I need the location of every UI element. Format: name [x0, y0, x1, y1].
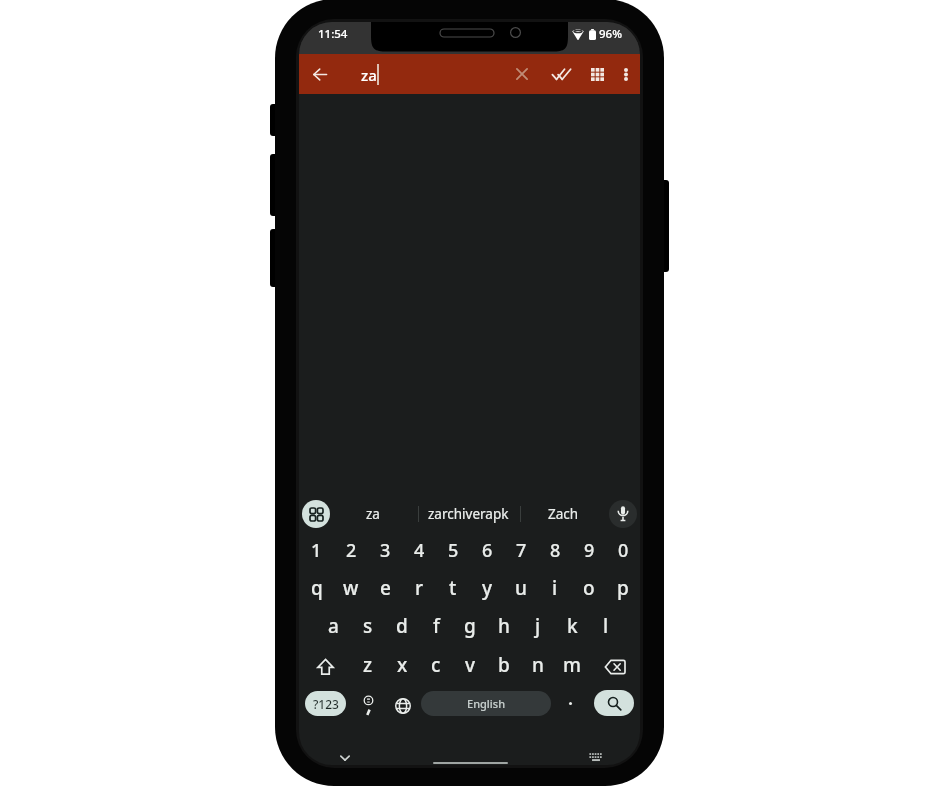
button[interactable]: Zach: [525, 496, 601, 532]
staticText: h: [498, 613, 510, 639]
staticText: v: [465, 652, 476, 678]
button[interactable]: Clear: [508, 60, 536, 88]
staticText: 96%: [599, 26, 622, 42]
button[interactable]: n: [521, 647, 555, 687]
button[interactable]: Backspace: [589, 647, 640, 687]
button[interactable]: More options: [612, 60, 640, 88]
staticText: 11:54: [318, 26, 348, 42]
staticText: z: [363, 652, 373, 678]
staticText: 5: [448, 538, 459, 563]
button[interactable]: k: [555, 607, 589, 645]
button[interactable]: q: [299, 569, 334, 607]
button[interactable]: f: [419, 607, 453, 645]
button[interactable]: e: [368, 569, 402, 607]
button[interactable]: g: [453, 607, 487, 645]
staticText: b: [498, 652, 510, 678]
button[interactable]: Search: [594, 690, 634, 716]
button[interactable]: l: [589, 607, 623, 645]
button[interactable]: Back: [306, 60, 334, 88]
staticText: e: [380, 575, 391, 601]
staticText: q: [311, 575, 323, 601]
button[interactable]: zarchiverapk: [419, 496, 518, 532]
staticText: 9: [584, 538, 595, 563]
staticText: 4: [414, 538, 425, 563]
button[interactable]: 9: [572, 531, 606, 569]
button[interactable]: t: [436, 569, 470, 607]
staticText: 6: [482, 538, 493, 563]
button[interactable]: d: [385, 607, 419, 645]
staticText: t: [449, 575, 457, 601]
staticText: g: [464, 613, 476, 639]
staticText: ?123: [313, 696, 339, 712]
staticText: u: [515, 575, 527, 601]
button[interactable]: 6: [470, 531, 504, 569]
button[interactable]: o: [572, 569, 606, 607]
button[interactable]: 5: [436, 531, 470, 569]
button[interactable]: 8: [538, 531, 572, 569]
button[interactable]: h: [487, 607, 521, 645]
button[interactable]: y: [470, 569, 504, 607]
staticText: r: [415, 575, 424, 601]
button[interactable]: v: [453, 647, 487, 687]
staticText: d: [396, 613, 408, 639]
staticText: 2: [346, 538, 357, 563]
button[interactable]: Voice input: [609, 500, 637, 528]
button[interactable]: Shift: [299, 647, 351, 687]
button[interactable]: Emoji and comma: [353, 691, 383, 723]
button[interactable]: p: [606, 569, 640, 607]
staticText: s: [363, 613, 373, 639]
button[interactable]: j: [521, 607, 555, 645]
staticText: 3: [380, 538, 391, 563]
staticText: n: [532, 652, 544, 678]
button[interactable]: za: [333, 496, 413, 532]
button[interactable]: Change language: [388, 690, 418, 722]
button[interactable]: English: [421, 691, 551, 716]
staticText: 0: [618, 538, 629, 563]
button[interactable]: Select all: [547, 60, 575, 88]
button[interactable]: 7: [504, 531, 538, 569]
staticText: c: [431, 652, 441, 678]
button[interactable]: z: [351, 647, 385, 687]
button[interactable]: i: [538, 569, 572, 607]
button[interactable]: 3: [368, 531, 402, 569]
staticText: zarchiverapk: [428, 505, 509, 523]
staticText: p: [617, 575, 629, 601]
staticText: x: [397, 652, 408, 678]
button[interactable]: Switch keyboard: [584, 745, 608, 765]
staticText: w: [343, 575, 359, 601]
button[interactable]: a: [316, 607, 351, 645]
button[interactable]: Apps: [583, 60, 611, 88]
button[interactable]: [557, 687, 583, 719]
button[interactable]: u: [504, 569, 538, 607]
button[interactable]: 1: [299, 531, 334, 569]
button[interactable]: m: [555, 647, 589, 687]
staticText: English: [467, 696, 506, 711]
button[interactable]: s: [351, 607, 385, 645]
button[interactable]: x: [385, 647, 419, 687]
staticText: o: [583, 575, 595, 601]
staticText: za: [366, 505, 380, 523]
button[interactable]: Hide keyboard: [333, 746, 357, 765]
staticText: j: [535, 613, 541, 639]
button[interactable]: 0: [606, 531, 640, 569]
staticText: Zach: [548, 505, 579, 523]
staticText: a: [328, 613, 339, 639]
staticText: k: [567, 613, 578, 639]
staticText: f: [433, 613, 440, 639]
staticText: 8: [550, 538, 561, 563]
staticText: l: [603, 613, 609, 639]
staticText: 1: [311, 538, 322, 563]
button[interactable]: r: [402, 569, 436, 607]
staticText: m: [563, 652, 581, 678]
button[interactable]: b: [487, 647, 521, 687]
button[interactable]: ?123: [305, 691, 346, 716]
button[interactable]: Keyboard toolbar: [302, 500, 330, 528]
staticText: za: [361, 65, 377, 85]
button[interactable]: w: [334, 569, 368, 607]
button[interactable]: 4: [402, 531, 436, 569]
button[interactable]: c: [419, 647, 453, 687]
button[interactable]: 2: [334, 531, 368, 569]
staticText: y: [482, 575, 493, 601]
staticText: 7: [516, 538, 527, 563]
staticText: i: [552, 575, 558, 601]
